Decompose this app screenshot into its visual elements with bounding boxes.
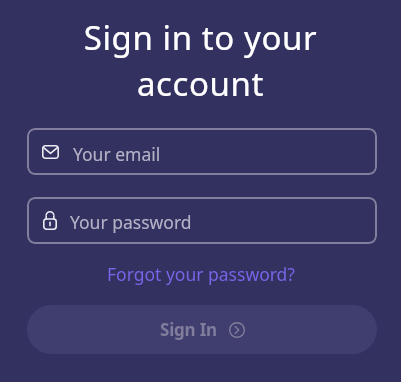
staticText: Your password bbox=[70, 210, 192, 234]
staticText: Sign in to your bbox=[0, 15, 401, 60]
button[interactable]: Sign In bbox=[27, 305, 377, 354]
staticText: account bbox=[0, 61, 401, 106]
staticText: Sign In bbox=[160, 318, 217, 341]
button[interactable]: Your email bbox=[27, 128, 377, 175]
staticText: Your email bbox=[73, 142, 161, 166]
staticText: Forgot your password? bbox=[107, 262, 295, 286]
button[interactable]: Your password bbox=[27, 197, 377, 244]
button[interactable]: Forgot your password? bbox=[107, 262, 295, 286]
